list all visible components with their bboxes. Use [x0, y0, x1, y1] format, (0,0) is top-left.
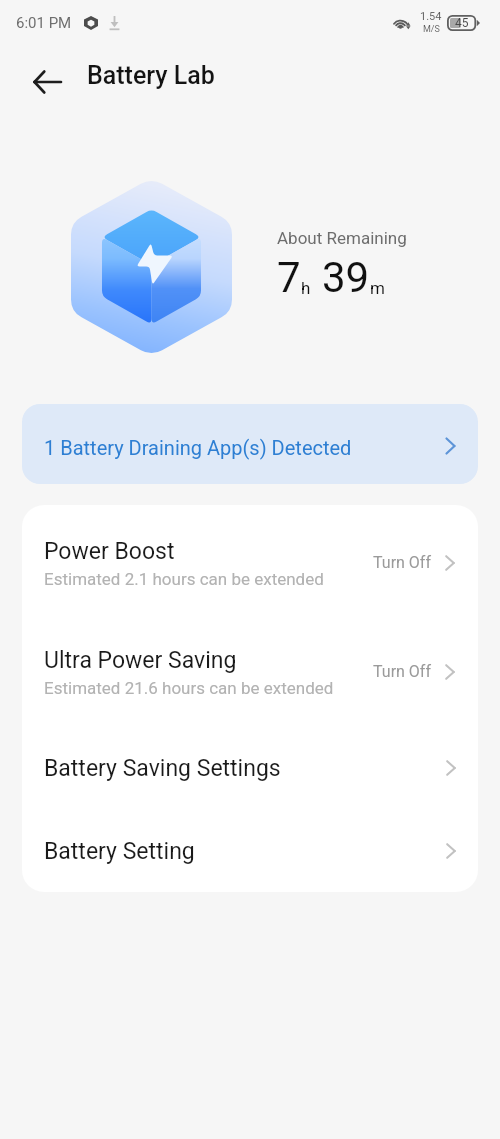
button[interactable]: Ultra Power Saving	[22, 622, 478, 730]
staticText: M/S	[423, 24, 440, 35]
button[interactable]: Battery Saving Settings	[22, 730, 478, 813]
staticText: Turn Off	[373, 553, 431, 572]
staticText: Battery Setting	[44, 838, 195, 865]
staticText: 1 Battery Draining App(s) Detected	[44, 436, 352, 459]
staticText: 45	[455, 16, 469, 30]
staticText: Estimated 21.6 hours can be extended	[44, 678, 334, 698]
staticText: 6:01 PM	[16, 14, 72, 32]
button[interactable]: Back	[21, 56, 73, 108]
staticText: Battery Lab	[87, 61, 215, 90]
button[interactable]: Battery Setting	[22, 813, 478, 892]
button[interactable]: 1 Battery Draining App(s) Detected	[22, 404, 478, 484]
button[interactable]: Power Boost	[22, 513, 478, 626]
staticText: Turn Off	[373, 662, 431, 681]
staticText: About Remaining	[277, 228, 407, 248]
staticText: 1.54	[420, 10, 442, 23]
staticText: h	[301, 278, 311, 298]
staticText: Battery Saving Settings	[44, 755, 281, 782]
staticText: Ultra Power Saving	[44, 647, 237, 674]
staticText: Power Boost	[44, 538, 175, 565]
staticText: m	[370, 278, 385, 298]
staticText: Estimated 2.1 hours can be extended	[44, 569, 324, 589]
staticText: 7	[277, 253, 301, 302]
staticText: 39	[322, 253, 370, 302]
